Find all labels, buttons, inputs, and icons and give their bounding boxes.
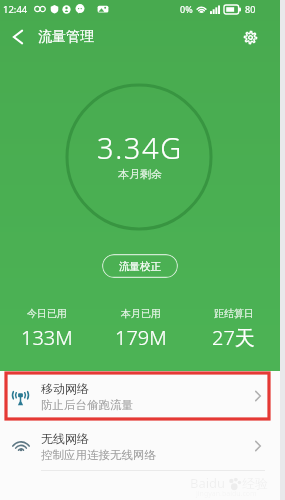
staticText: 距结算日: [214, 307, 254, 320]
staticText: 3.34G: [97, 128, 183, 167]
staticText: 12:44: [3, 3, 28, 16]
staticText: 0%: [180, 3, 193, 15]
staticText: 无线网络: [41, 431, 89, 446]
staticText: 本月剩余: [118, 167, 162, 181]
button[interactable]: 流量校正: [102, 254, 178, 278]
staticText: 本月已用: [121, 307, 161, 320]
button[interactable]: Back: [0, 18, 36, 56]
staticText: 移动网络: [41, 381, 89, 396]
button[interactable]: 无线网络: [0, 421, 280, 471]
staticText: 80: [245, 3, 256, 15]
staticText: 防止后台偷跑流量: [41, 398, 133, 412]
staticText: 今日已用: [27, 307, 67, 320]
staticText: 流量管理: [38, 28, 94, 46]
staticText: Baidu: [190, 474, 226, 492]
staticText: 经验: [242, 475, 268, 491]
staticText: 133M: [21, 324, 73, 351]
staticText: 179M: [115, 324, 167, 351]
staticText: 27天: [212, 324, 255, 351]
button[interactable]: Settings: [231, 18, 269, 56]
staticText: 流量校正: [119, 260, 161, 273]
staticText: 控制应用连接无线网络: [41, 448, 156, 462]
button[interactable]: 移动网络: [0, 371, 280, 421]
